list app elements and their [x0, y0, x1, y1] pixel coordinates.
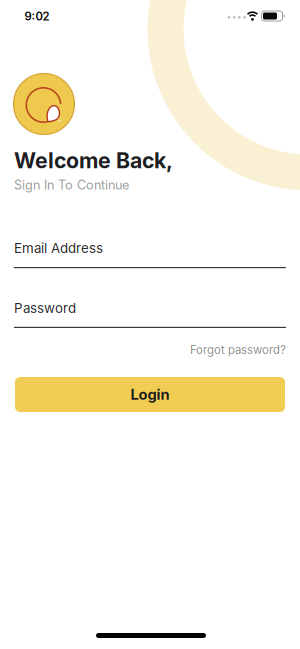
staticText: Forgot password?: [190, 343, 286, 357]
button[interactable]: Login: [15, 377, 285, 412]
staticText: 9:02: [24, 10, 49, 23]
button[interactable]: Email Address: [14, 240, 286, 268]
button[interactable]: Forgot password?: [14, 343, 286, 357]
staticText: Password: [14, 300, 76, 316]
staticText: Welcome Back,: [14, 148, 173, 173]
staticText: Sign In To Continue: [14, 177, 129, 193]
staticText: Email Address: [14, 240, 103, 256]
staticText: Login: [130, 386, 169, 403]
button[interactable]: Password: [14, 300, 286, 328]
